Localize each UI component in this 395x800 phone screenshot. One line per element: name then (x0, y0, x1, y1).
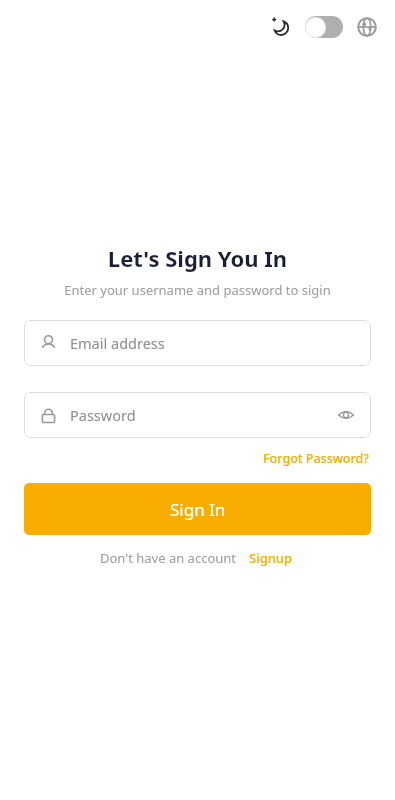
button[interactable]: Toggle theme (305, 16, 343, 38)
button[interactable]: Dark mode (266, 12, 296, 42)
staticText: Forgot Password? (263, 450, 369, 467)
staticText: Let's Sign You In (0, 243, 395, 273)
staticText: Email address (70, 333, 357, 353)
button[interactable]: Email address (24, 320, 371, 366)
button[interactable]: Show password (335, 404, 357, 426)
staticText: Enter your username and password to sigi… (0, 281, 395, 299)
staticText: Password (70, 405, 335, 425)
button[interactable]: Password (24, 392, 371, 438)
button[interactable]: Forgot Password? (261, 448, 371, 469)
button[interactable]: Language (352, 12, 382, 42)
staticText: Don't have an account (100, 549, 237, 567)
button[interactable]: Signup (247, 547, 295, 569)
staticText: Sign In (170, 498, 226, 521)
staticText: Signup (249, 549, 293, 567)
button[interactable]: Sign In (24, 483, 371, 535)
